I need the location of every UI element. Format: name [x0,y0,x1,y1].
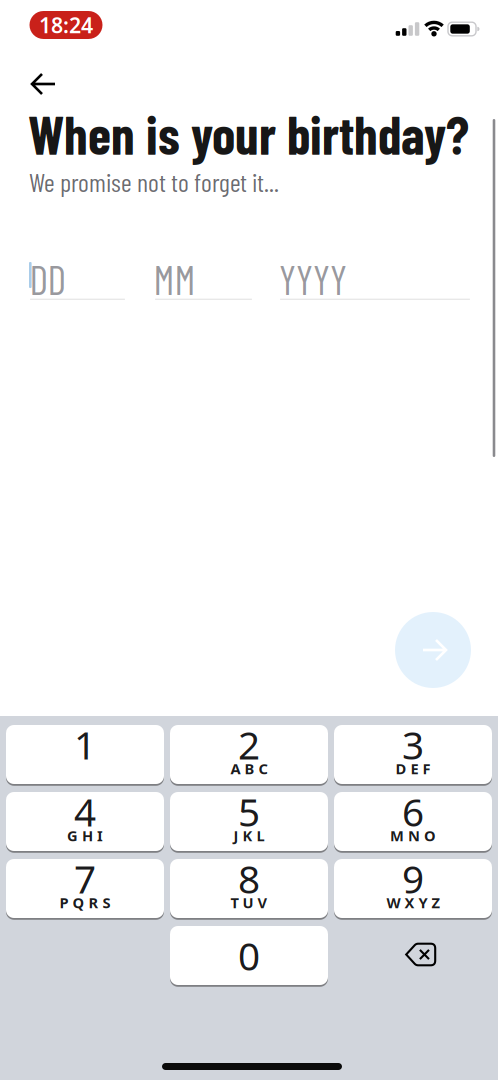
staticText: MM [153,255,195,303]
staticText: When is your birthday? [28,102,469,165]
staticText: 8 [238,853,260,904]
staticText: 1 [74,719,96,770]
button[interactable]: Day [30,259,125,300]
staticText: 5 [238,786,260,837]
button[interactable]: 2 [170,724,328,785]
staticText: 7 [74,853,96,904]
staticText: DD [29,255,66,303]
staticText: M N O [390,826,436,845]
staticText: 0 [238,930,260,981]
staticText: 6 [402,786,424,837]
staticText: G H I [67,826,103,845]
staticText: P Q R S [59,893,110,912]
button[interactable]: 4 [6,791,164,852]
button[interactable]: Month [155,259,252,300]
button[interactable]: Year [280,259,470,300]
button[interactable]: Return to call [29,11,102,39]
button[interactable]: 7 [6,858,164,919]
staticText: 3 [402,719,424,770]
button[interactable]: Continue [395,612,471,688]
button[interactable]: Back [22,66,66,102]
staticText: 9 [402,853,424,904]
button[interactable]: 5 [170,791,328,852]
staticText: T U V [230,893,267,912]
staticText: YYYY [279,255,347,303]
staticText: A B C [230,759,267,778]
staticText: W X Y Z [386,893,439,912]
button[interactable]: 9 [334,858,492,919]
button[interactable]: 3 [334,724,492,785]
staticText: J K L [233,826,264,845]
staticText: 18:24 [39,11,93,39]
staticText: We promise not to forget it... [29,166,279,197]
button[interactable]: 6 [334,791,492,852]
staticText: 2 [238,719,260,770]
button[interactable]: 0 [170,925,328,986]
staticText: 4 [74,786,96,837]
button[interactable]: 8 [170,858,328,919]
staticText: D E F [395,759,430,778]
button[interactable]: 1 [6,724,164,785]
button[interactable]: Delete [342,925,498,984]
